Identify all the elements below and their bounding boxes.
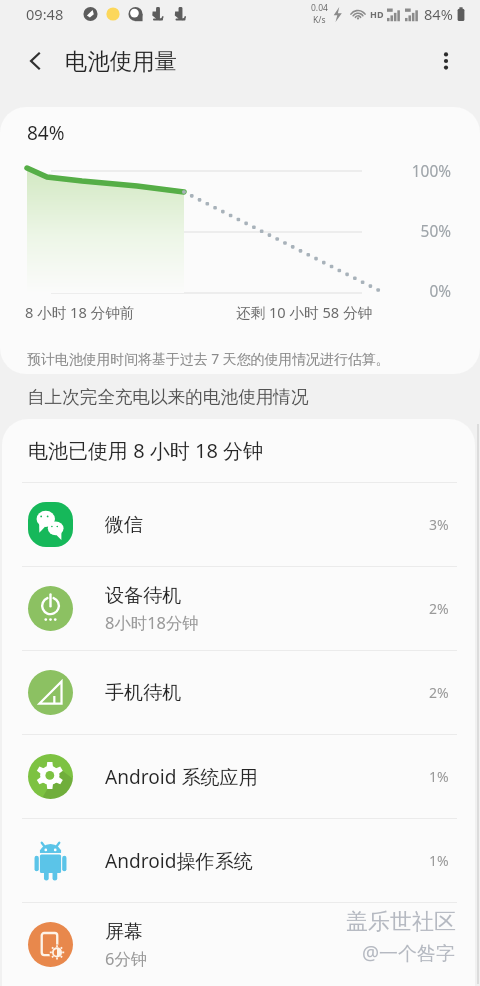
- staticText: 设备待机: [105, 584, 182, 608]
- button[interactable]: 设备待机: [2, 566, 475, 650]
- staticText: 1%: [429, 767, 449, 786]
- staticText: 屏幕: [105, 920, 144, 944]
- button[interactable]: Android操作系统: [2, 818, 475, 902]
- staticText: 100%: [390, 161, 451, 182]
- button[interactable]: Android 系统应用: [2, 734, 475, 818]
- staticText: 50%: [390, 221, 451, 242]
- staticText: 微信: [105, 513, 144, 537]
- button[interactable]: 微信: [2, 482, 475, 566]
- staticText: 2%: [429, 683, 449, 702]
- staticText: @一个咎字: [362, 940, 456, 966]
- staticText: 2%: [429, 599, 449, 618]
- staticText: 电池使用量: [65, 47, 177, 75]
- staticText: Android操作系统: [105, 848, 253, 874]
- staticText: 自上次完全充电以来的电池使用情况: [27, 386, 309, 408]
- button[interactable]: 屏幕: [2, 902, 475, 986]
- staticText: 电池已使用 8 小时 18 分钟: [28, 437, 264, 464]
- staticText: 1%: [429, 851, 449, 870]
- staticText: 预计电池使用时间将基于过去 7 天您的使用情况进行估算。: [27, 349, 390, 368]
- staticText: 8小时18分钟: [105, 611, 199, 633]
- staticText: 8 小时 18 分钟前: [25, 302, 135, 322]
- button[interactable]: Back: [13, 39, 57, 83]
- staticText: 盖乐世社区: [346, 908, 456, 936]
- button[interactable]: More options: [424, 39, 468, 83]
- staticText: 0%: [390, 281, 451, 302]
- staticText: 84%: [27, 120, 65, 146]
- staticText: 0.04: [311, 2, 328, 14]
- button[interactable]: 手机待机: [2, 650, 475, 734]
- staticText: 09:48: [26, 4, 64, 24]
- staticText: K/s: [313, 14, 326, 26]
- staticText: 84%: [424, 4, 453, 24]
- staticText: Android 系统应用: [105, 764, 258, 790]
- staticText: 还剩 10 小时 58 分钟: [236, 302, 373, 322]
- staticText: 手机待机: [105, 681, 182, 705]
- staticText: HD: [370, 8, 384, 20]
- staticText: 3%: [429, 515, 449, 534]
- staticText: 6分钟: [105, 947, 148, 969]
